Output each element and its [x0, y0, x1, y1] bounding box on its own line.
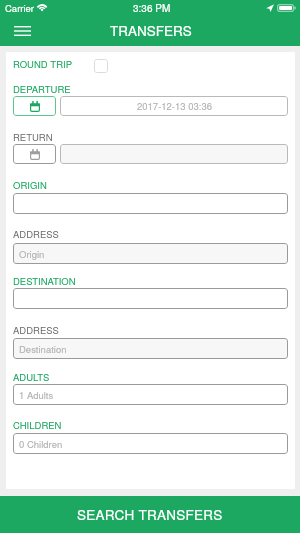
- staticText: Carrier: [5, 1, 35, 15]
- staticText: ADULTS: [13, 370, 50, 384]
- button[interactable]: [13, 193, 288, 214]
- staticText: Origin: [19, 247, 45, 261]
- button[interactable]: 1 Adults: [13, 384, 288, 405]
- staticText: RETURN: [13, 130, 53, 144]
- button[interactable]: [60, 144, 288, 164]
- staticText: ADDRESS: [13, 323, 59, 337]
- staticText: 0 Children: [19, 437, 63, 451]
- button[interactable]: Choose DEPARTURE date: [13, 96, 56, 116]
- button[interactable]: Choose RETURN date: [13, 144, 56, 164]
- button[interactable]: Origin: [13, 243, 288, 264]
- staticText: 2017-12-13 03:36: [137, 99, 212, 113]
- button[interactable]: SEARCH TRANSFERS: [0, 496, 300, 533]
- button[interactable]: Round trip toggle: [94, 59, 108, 73]
- staticText: DESTINATION: [13, 274, 76, 288]
- staticText: SEARCH TRANSFERS: [77, 505, 223, 524]
- button[interactable]: Destination: [13, 338, 288, 359]
- staticText: 3:36 PM: [133, 1, 171, 15]
- button[interactable]: Open navigation menu: [14, 21, 38, 41]
- staticText: 1 Adults: [19, 388, 54, 402]
- staticText: ORIGIN: [13, 178, 47, 192]
- staticText: ADDRESS: [13, 227, 59, 241]
- staticText: ROUND TRIP: [13, 57, 72, 71]
- staticText: CHILDREN: [13, 418, 62, 432]
- button[interactable]: [13, 288, 288, 309]
- button[interactable]: 2017-12-13 03:36: [60, 96, 288, 116]
- staticText: DEPARTURE: [13, 82, 71, 96]
- button[interactable]: 0 Children: [13, 433, 288, 454]
- staticText: TRANSFERS: [110, 21, 192, 40]
- staticText: Destination: [19, 342, 67, 356]
